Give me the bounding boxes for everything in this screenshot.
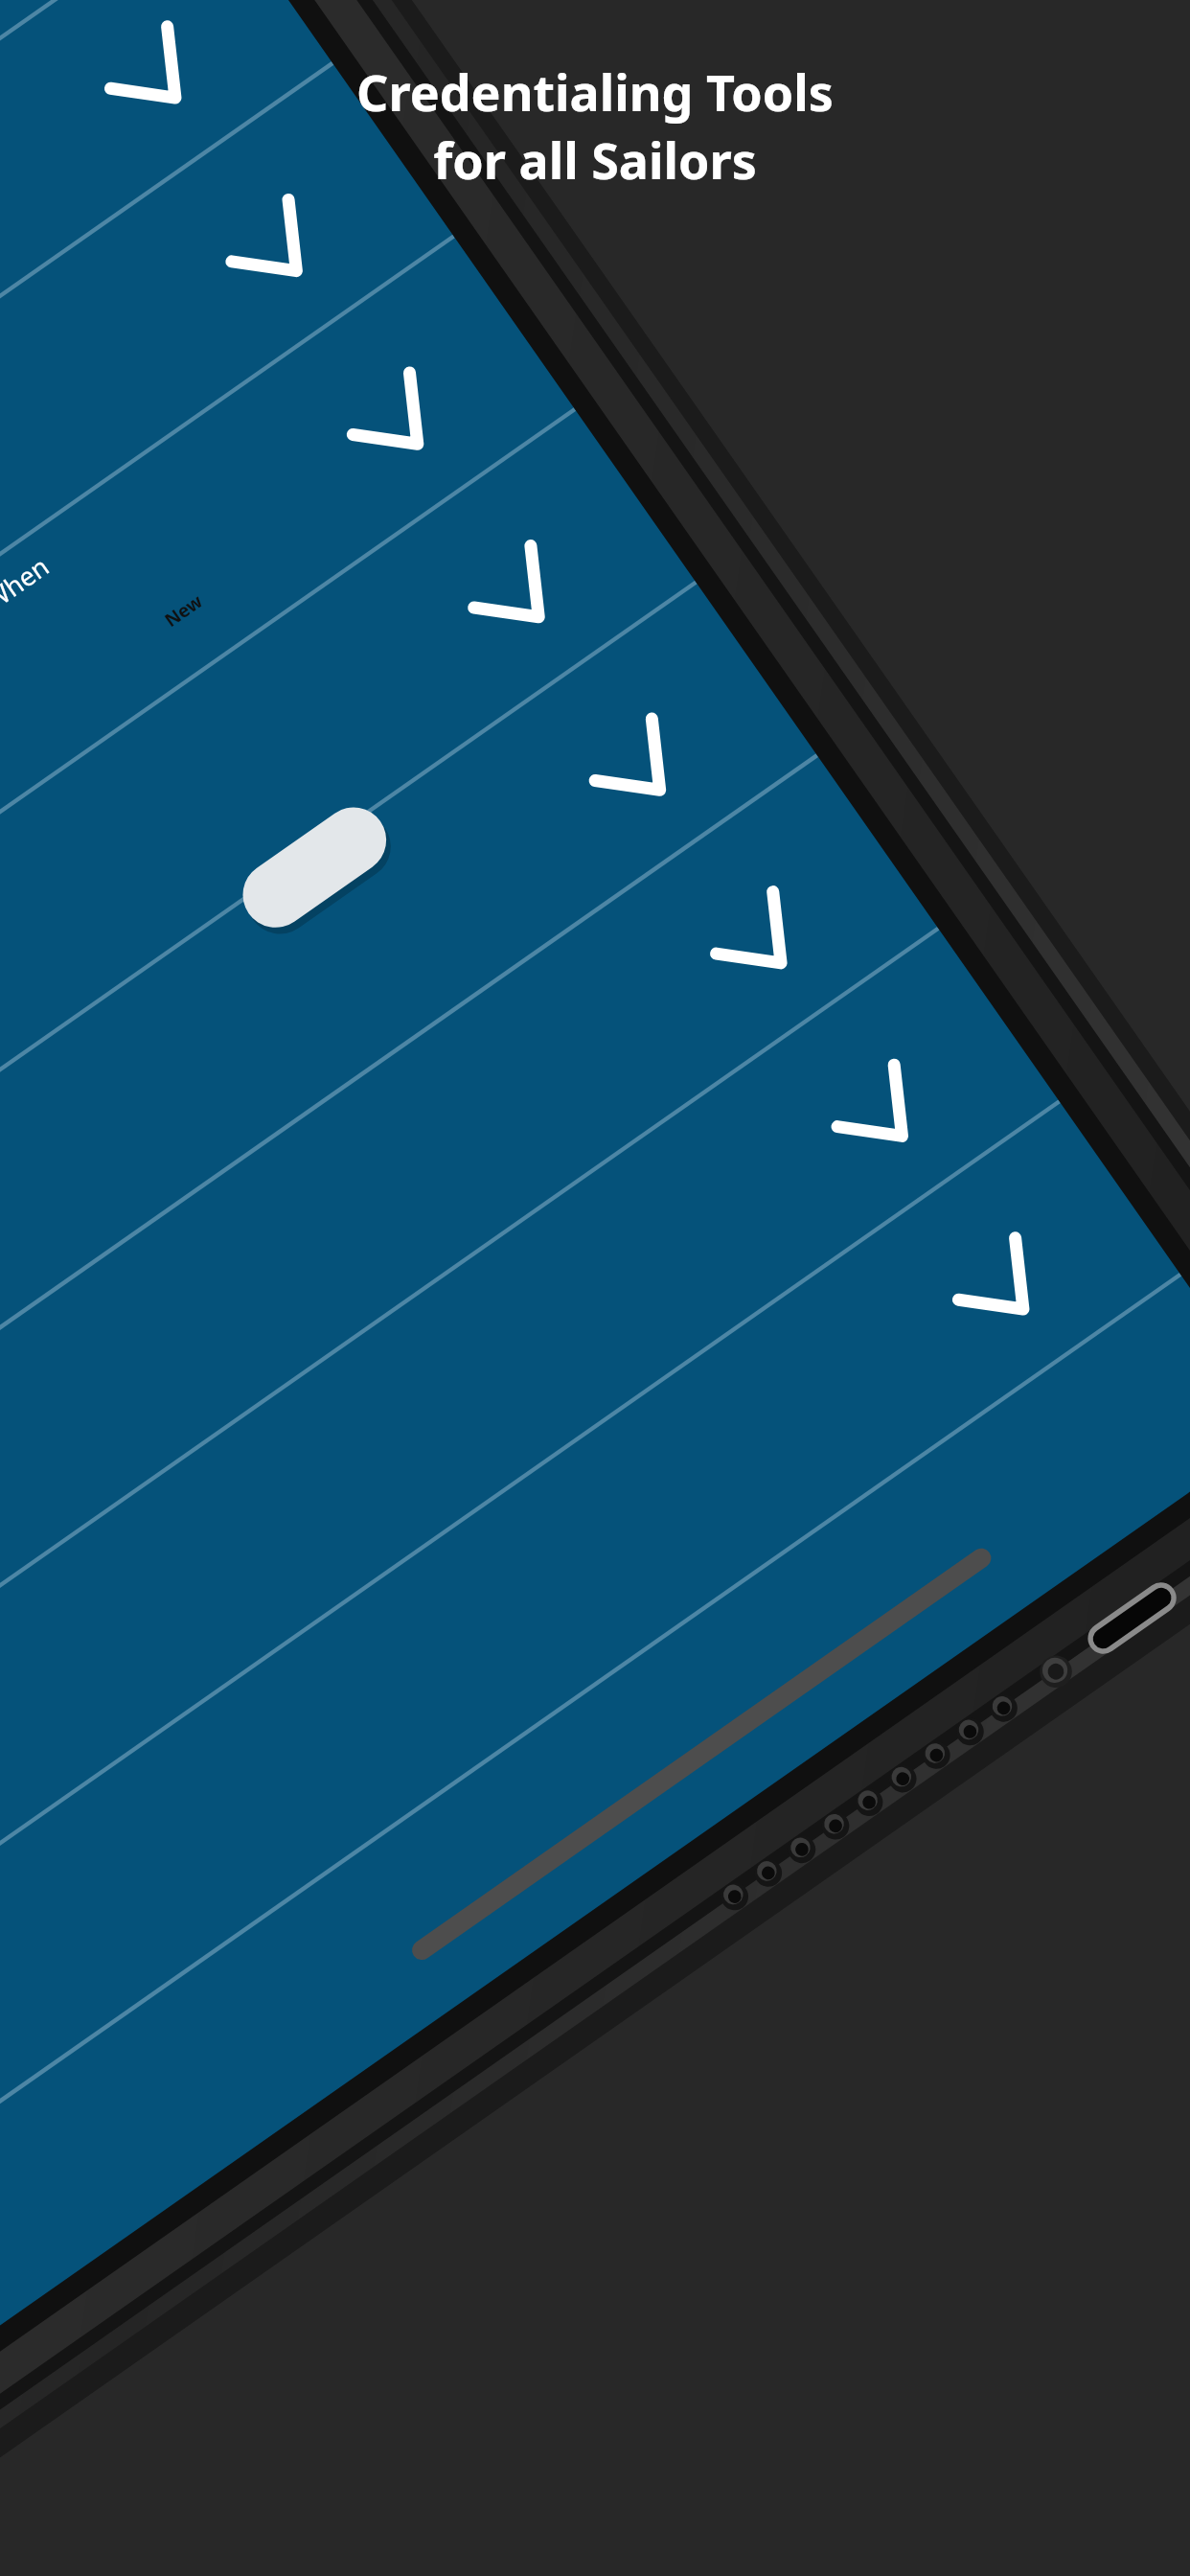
staticText: When: [0, 548, 55, 618]
staticText: for all Sailors: [433, 126, 757, 194]
staticText: New: [159, 588, 207, 632]
button[interactable]: Credentialing Tools app preview: [0, 1733, 671, 2576]
staticText: Credentialing Tools: [356, 57, 834, 126]
